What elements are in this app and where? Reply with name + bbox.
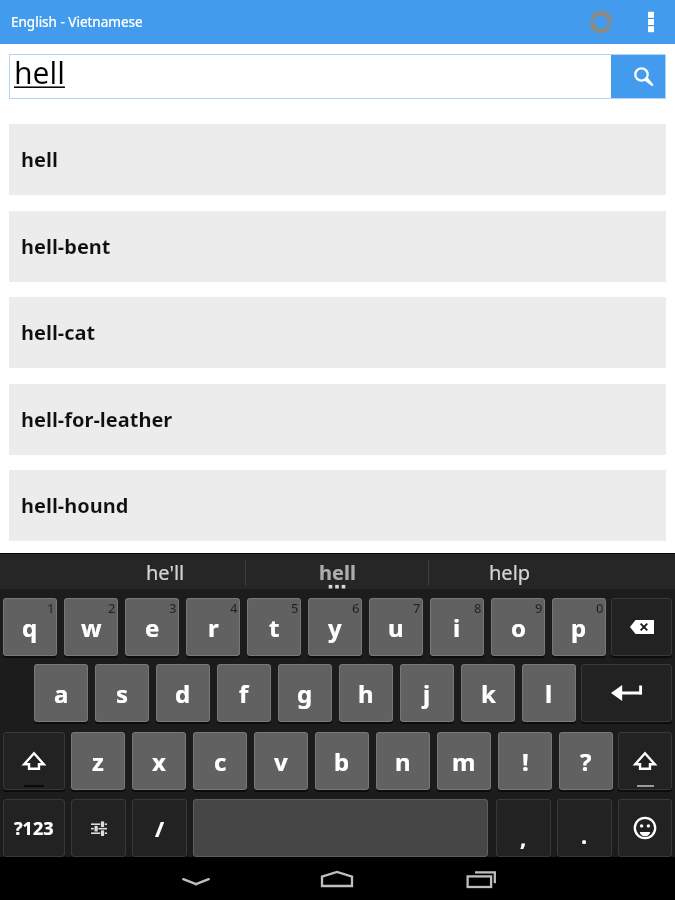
staticText: y <box>328 611 342 644</box>
button[interactable]: o <box>491 598 545 656</box>
staticText: help <box>489 559 531 586</box>
button[interactable]: u <box>369 598 423 656</box>
button[interactable]: Search <box>611 54 666 99</box>
button[interactable]: hell-cat <box>9 297 666 368</box>
staticText: 7 <box>413 599 421 617</box>
staticText: x <box>152 745 166 778</box>
button[interactable]: i <box>430 598 484 656</box>
staticText: hell <box>319 559 356 586</box>
staticText: o <box>511 611 526 644</box>
button[interactable]: t <box>247 598 301 656</box>
button[interactable]: hell-bent <box>9 211 666 282</box>
button[interactable]: q <box>3 598 57 656</box>
staticText: he'll <box>146 559 185 586</box>
staticText: 6 <box>352 599 360 617</box>
staticText: k <box>481 677 496 710</box>
button[interactable]: More options <box>629 0 673 44</box>
staticText: u <box>388 611 404 644</box>
staticText: g <box>297 677 313 710</box>
button[interactable]: j <box>400 664 454 722</box>
button[interactable]: c <box>193 732 247 790</box>
button[interactable]: Shift <box>3 732 65 790</box>
staticText: 9 <box>535 599 543 617</box>
staticText: r <box>208 611 219 644</box>
button[interactable]: ? <box>559 732 613 790</box>
staticText: hell-bent <box>21 233 111 260</box>
button[interactable]: , <box>496 799 551 857</box>
button[interactable]: e <box>125 598 179 656</box>
staticText: s <box>116 677 129 710</box>
staticText: j <box>423 677 431 710</box>
button[interactable]: n <box>376 732 430 790</box>
button[interactable]: help <box>428 554 592 589</box>
button[interactable]: p <box>552 598 606 656</box>
button[interactable]: hell <box>9 124 666 195</box>
button[interactable]: / <box>132 799 187 857</box>
staticText: ! <box>522 745 529 778</box>
staticText: hell-hound <box>21 492 129 519</box>
staticText: hell-cat <box>21 319 96 346</box>
button[interactable]: Enter <box>581 664 672 722</box>
staticText: 1 <box>47 599 55 617</box>
staticText: c <box>214 745 227 778</box>
button[interactable]: hell <box>255 554 419 589</box>
staticText: ? <box>580 745 592 778</box>
button[interactable]: Shift <box>618 732 672 790</box>
staticText: hell <box>14 52 65 93</box>
staticText: 2 <box>108 599 116 617</box>
staticText: l <box>545 677 553 710</box>
button[interactable]: Recent apps <box>452 857 512 900</box>
staticText: b <box>334 745 350 778</box>
button[interactable]: . <box>557 799 612 857</box>
staticText: p <box>571 611 587 644</box>
staticText: n <box>395 745 411 778</box>
button[interactable]: w <box>64 598 118 656</box>
button[interactable]: y <box>308 598 362 656</box>
button[interactable]: l <box>522 664 576 722</box>
button[interactable]: m <box>437 732 491 790</box>
button[interactable]: Delete <box>611 598 672 656</box>
button[interactable]: r <box>186 598 240 656</box>
button[interactable]: hell-hound <box>9 470 666 541</box>
button[interactable]: hell-for-leather <box>9 384 666 455</box>
staticText: 5 <box>291 599 299 617</box>
staticText: hell <box>21 146 58 173</box>
staticText: d <box>175 677 191 710</box>
button[interactable]: k <box>461 664 515 722</box>
staticText: hell-for-leather <box>21 406 173 433</box>
button[interactable]: ! <box>498 732 552 790</box>
staticText: 4 <box>230 599 238 617</box>
button[interactable]: a <box>34 664 88 722</box>
button[interactable]: Hide keyboard <box>166 857 226 900</box>
staticText: t <box>269 611 280 644</box>
button[interactable]: d <box>156 664 210 722</box>
button[interactable]: Home <box>307 857 367 900</box>
staticText: f <box>239 677 249 710</box>
button[interactable]: z <box>71 732 125 790</box>
button[interactable]: h <box>339 664 393 722</box>
button[interactable]: g <box>278 664 332 722</box>
button[interactable]: Space <box>193 799 488 857</box>
staticText: ?123 <box>14 816 54 841</box>
staticText: e <box>145 611 160 644</box>
staticText: . <box>581 820 588 850</box>
staticText: v <box>274 745 288 778</box>
button[interactable]: f <box>217 664 271 722</box>
staticText: , <box>520 822 527 852</box>
button[interactable]: b <box>315 732 369 790</box>
button[interactable]: s <box>95 664 149 722</box>
button[interactable]: Input settings <box>71 799 126 857</box>
button[interactable]: hell <box>9 54 611 99</box>
button[interactable]: ?123 <box>3 799 65 857</box>
staticText: z <box>92 745 104 778</box>
staticText: q <box>22 611 38 644</box>
button[interactable]: v <box>254 732 308 790</box>
button[interactable]: Emoji <box>618 799 672 857</box>
staticText: 0 <box>596 599 604 617</box>
button[interactable]: Refresh <box>579 0 623 44</box>
staticText: 8 <box>474 599 482 617</box>
staticText: h <box>358 677 374 710</box>
button[interactable]: he'll <box>83 554 247 589</box>
staticText: a <box>54 677 69 710</box>
button[interactable]: x <box>132 732 186 790</box>
